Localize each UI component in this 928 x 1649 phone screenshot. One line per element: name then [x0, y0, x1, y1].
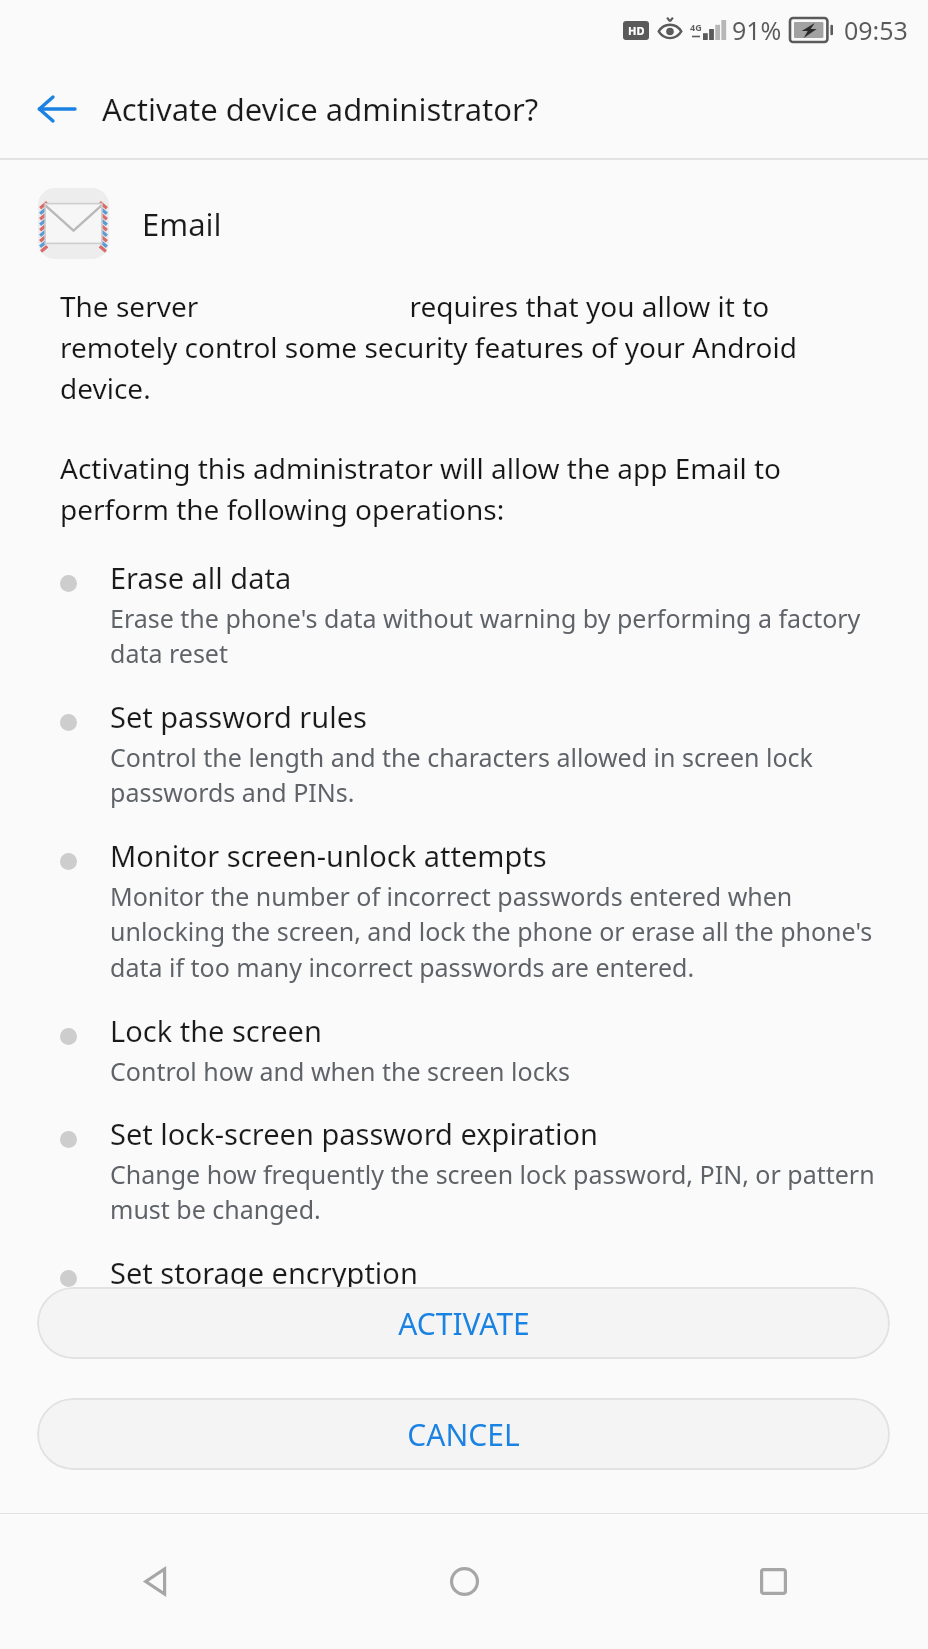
button[interactable]: Recent apps	[619, 1514, 928, 1649]
staticText: 09:53	[844, 13, 908, 47]
staticText: Require that stored app data be encrypte…	[110, 1296, 615, 1330]
staticText: Activating this administrator will allow…	[60, 449, 870, 528]
staticText: HD	[628, 23, 645, 38]
staticText: Monitor the number of incorrect password…	[110, 879, 888, 985]
staticText: 91%	[732, 13, 782, 47]
button[interactable]: ACTIVATE	[37, 1287, 890, 1359]
staticText: Monitor screen-unlock attempts	[110, 836, 547, 875]
button[interactable]: CANCEL	[37, 1398, 890, 1470]
staticText: Set lock-screen password expiration	[110, 1114, 598, 1153]
staticText: CANCEL	[407, 1414, 520, 1455]
staticText: 4G	[690, 21, 702, 33]
staticText: ACTIVATE	[398, 1303, 530, 1344]
button[interactable]: Back	[26, 78, 88, 140]
staticText: Email	[142, 203, 222, 245]
staticText: Erase all data	[110, 558, 292, 597]
staticText: Control how and when the screen locks	[110, 1054, 570, 1088]
button[interactable]: Home	[310, 1514, 619, 1649]
staticText: The server requires that you allow it to…	[60, 287, 868, 407]
staticText: Change how frequently the screen lock pa…	[110, 1157, 888, 1227]
staticText: Set storage encryption	[110, 1253, 418, 1292]
button[interactable]: Back	[0, 1514, 310, 1649]
staticText: Erase the phone's data without warning b…	[110, 601, 888, 671]
staticText: Control the length and the characters al…	[110, 740, 888, 810]
staticText: Activate device administrator?	[102, 88, 539, 130]
staticText: Lock the screen	[110, 1011, 322, 1050]
staticText: Set password rules	[110, 697, 367, 736]
